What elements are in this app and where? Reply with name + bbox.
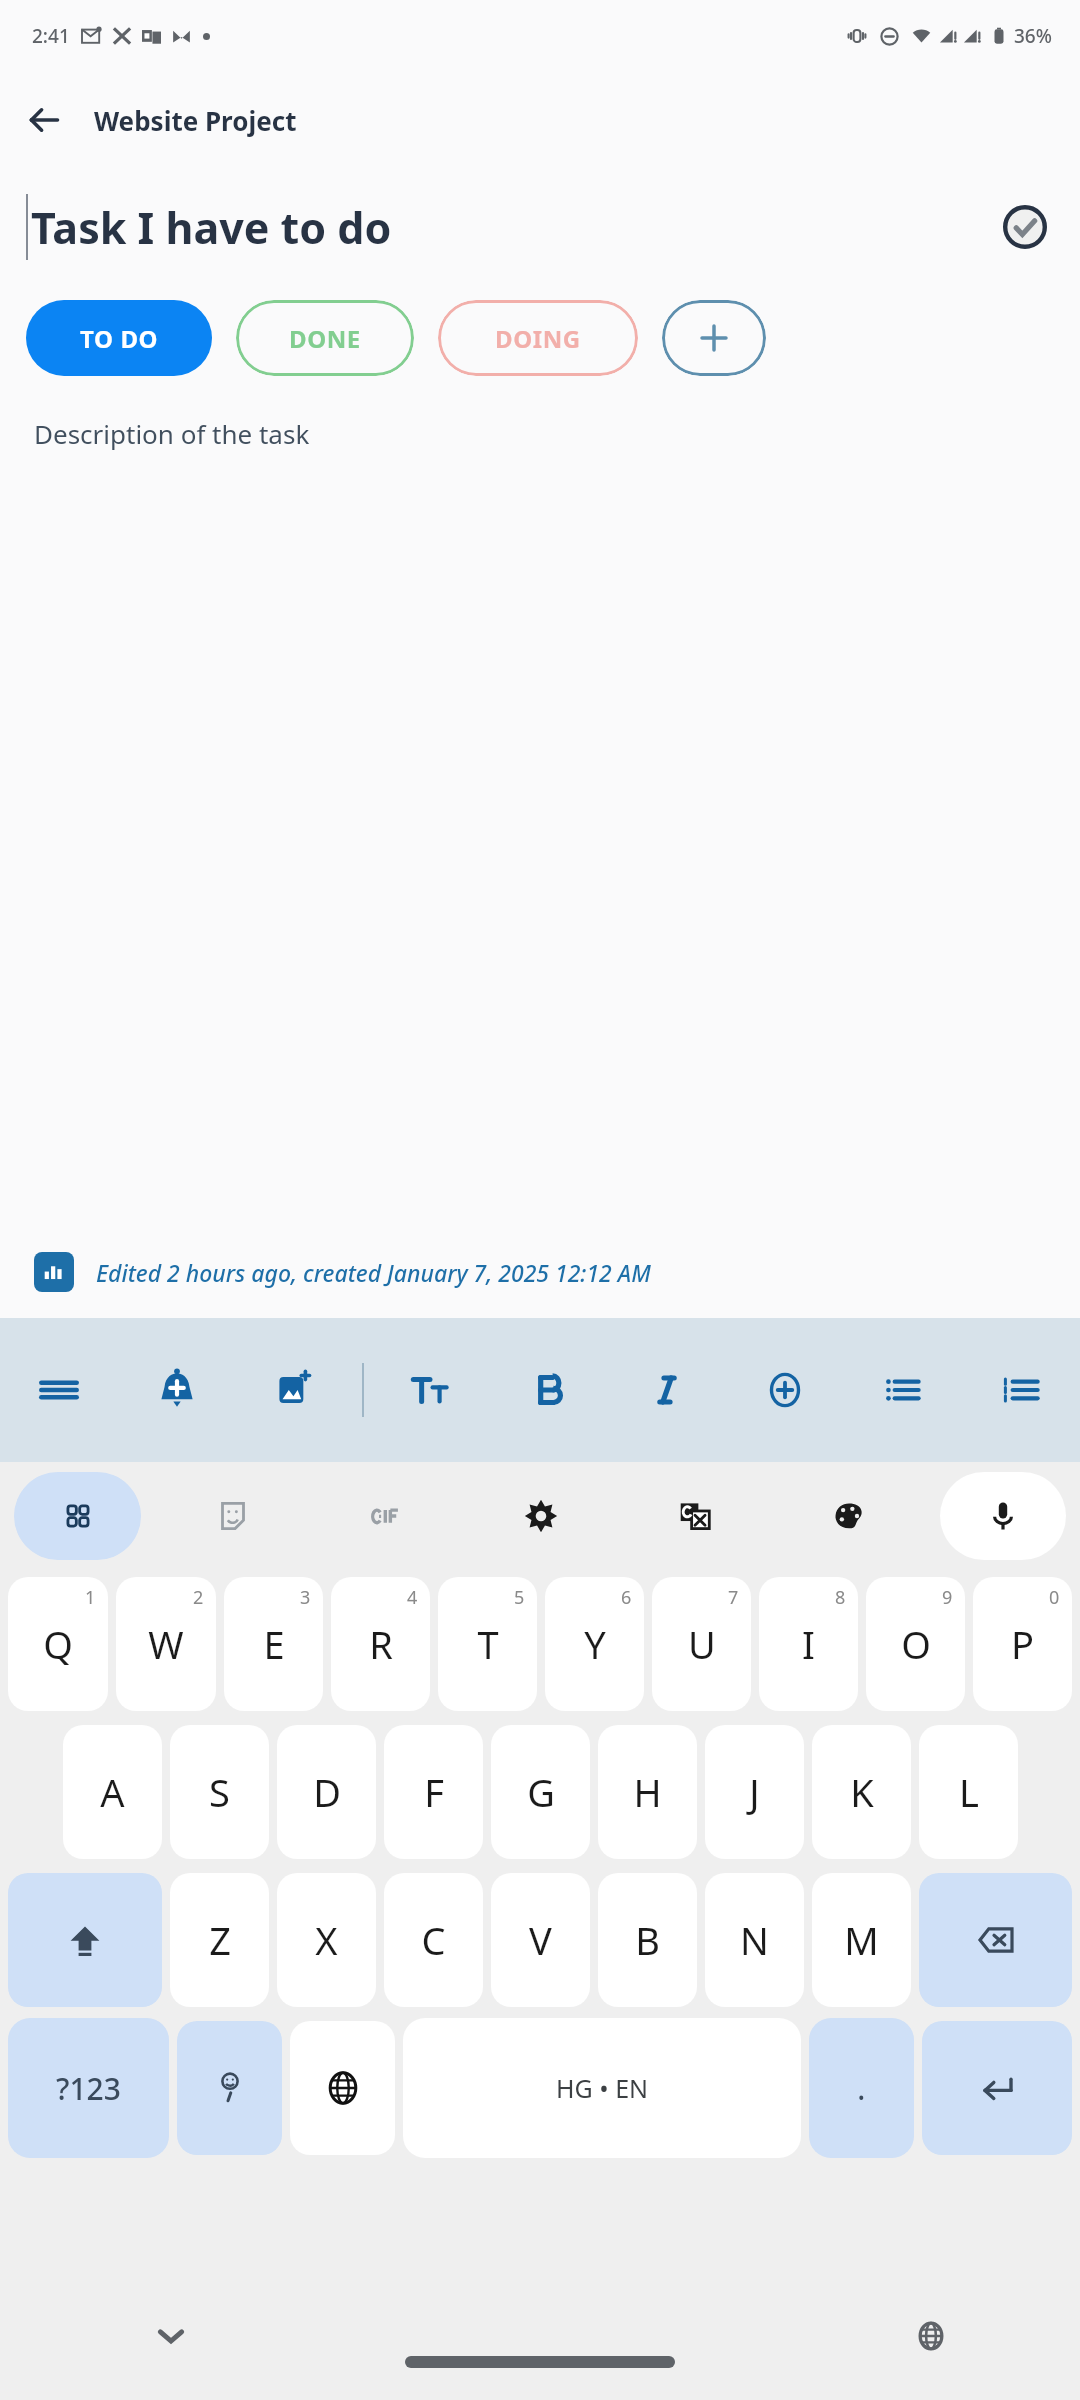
button[interactable]: Menu xyxy=(0,1318,118,1462)
button[interactable]: N xyxy=(705,1873,804,2007)
button[interactable]: M xyxy=(812,1873,911,2007)
button[interactable]: W xyxy=(116,1577,216,1711)
button[interactable]: Add reminder xyxy=(118,1318,236,1462)
button[interactable]: TO DO xyxy=(26,300,212,376)
button[interactable]: Settings xyxy=(478,1472,604,1560)
staticText: 2 xyxy=(193,1585,204,1610)
button[interactable]: Insert xyxy=(726,1318,844,1462)
button[interactable]: Change language xyxy=(290,2021,395,2155)
staticText: 1 xyxy=(85,1585,96,1610)
button[interactable]: U xyxy=(652,1577,751,1711)
button[interactable]: Numbered list xyxy=(962,1318,1080,1462)
button[interactable]: X xyxy=(277,1873,376,2007)
button[interactable]: HG • EN xyxy=(403,2018,801,2158)
button[interactable]: V xyxy=(491,1873,590,2007)
button[interactable]: Switch input method xyxy=(900,2305,962,2367)
button[interactable]: A xyxy=(63,1725,162,1859)
button[interactable]: . xyxy=(809,2018,914,2158)
staticText: X xyxy=(315,1914,338,1966)
staticText: Z xyxy=(209,1914,231,1966)
staticText: J xyxy=(749,1766,760,1818)
staticText: 9 xyxy=(942,1585,953,1610)
staticText: S xyxy=(209,1766,230,1818)
staticText: N xyxy=(740,1914,769,1966)
button[interactable]: Voice input xyxy=(940,1472,1066,1560)
staticText: 36% xyxy=(1014,23,1052,49)
button[interactable]: Q xyxy=(8,1577,108,1711)
button[interactable]: Hide keyboard xyxy=(140,2305,202,2367)
button[interactable]: Text style xyxy=(372,1318,490,1462)
button[interactable]: G xyxy=(491,1725,590,1859)
button[interactable]: Emoji xyxy=(177,2021,282,2155)
button[interactable]: ?123 xyxy=(8,2018,169,2158)
button[interactable]: DONE xyxy=(236,300,414,376)
staticText: TO DO xyxy=(80,322,159,355)
button[interactable]: Enter xyxy=(922,2021,1072,2155)
staticText: Q xyxy=(43,1618,73,1670)
button[interactable]: E xyxy=(224,1577,323,1711)
button[interactable]: B xyxy=(598,1873,697,2007)
staticText: Description of the task xyxy=(34,416,310,451)
button[interactable]: Z xyxy=(170,1873,269,2007)
button[interactable]: GIF xyxy=(324,1472,450,1560)
button[interactable]: K xyxy=(812,1725,911,1859)
button[interactable]: Bulleted list xyxy=(844,1318,962,1462)
staticText: Y xyxy=(584,1618,606,1670)
staticText: L xyxy=(959,1766,979,1818)
staticText: Edited 2 hours ago, created January 7, 2… xyxy=(96,1257,651,1288)
button[interactable]: C xyxy=(384,1873,483,2007)
staticText: Task I have to do xyxy=(31,198,998,257)
button[interactable]: S xyxy=(170,1725,269,1859)
staticText: O xyxy=(901,1618,931,1670)
button[interactable]: Add status xyxy=(662,300,766,376)
staticText: R xyxy=(369,1618,393,1670)
button[interactable]: I xyxy=(759,1577,858,1711)
staticText: 6 xyxy=(621,1585,632,1610)
button[interactable]: Italic xyxy=(608,1318,726,1462)
button[interactable]: T xyxy=(438,1577,537,1711)
staticText: G xyxy=(527,1766,555,1818)
button[interactable]: R xyxy=(331,1577,430,1711)
staticText: P xyxy=(1011,1618,1034,1670)
staticText: F xyxy=(424,1766,444,1818)
staticText: 3 xyxy=(300,1585,311,1610)
button[interactable]: J xyxy=(705,1725,804,1859)
button[interactable]: D xyxy=(277,1725,376,1859)
button[interactable]: P xyxy=(973,1577,1072,1711)
staticText: Website Project xyxy=(94,103,297,138)
staticText: 0 xyxy=(1049,1585,1060,1610)
staticText: DONE xyxy=(289,322,361,355)
staticText: C xyxy=(421,1914,446,1966)
staticText: 5 xyxy=(514,1585,525,1610)
button[interactable]: Back xyxy=(16,92,72,148)
staticText: I xyxy=(802,1618,815,1670)
button[interactable]: Description of the task xyxy=(0,390,1080,1226)
button[interactable]: O xyxy=(866,1577,965,1711)
button[interactable]: F xyxy=(384,1725,483,1859)
staticText: B xyxy=(635,1914,660,1966)
button[interactable]: DOING xyxy=(438,300,638,376)
button[interactable]: Keyboard modes xyxy=(14,1472,141,1560)
button[interactable]: Add image xyxy=(236,1318,354,1462)
button[interactable]: Stickers xyxy=(169,1472,296,1560)
staticText: 7 xyxy=(728,1585,739,1610)
button[interactable]: Translate xyxy=(632,1472,758,1560)
staticText: M xyxy=(844,1914,879,1966)
staticText: U xyxy=(688,1618,716,1670)
button[interactable]: Shift xyxy=(8,1873,162,2007)
staticText: H xyxy=(633,1766,662,1818)
button[interactable]: Backspace xyxy=(919,1873,1072,2007)
button[interactable]: H xyxy=(598,1725,697,1859)
staticText: . xyxy=(857,2066,866,2110)
button[interactable]: Theme xyxy=(786,1472,912,1560)
staticText: 8 xyxy=(835,1585,846,1610)
staticText: HG • EN xyxy=(556,2071,649,2105)
staticText: 2:41 xyxy=(32,23,70,49)
staticText: T xyxy=(477,1618,499,1670)
button[interactable]: Bold xyxy=(490,1318,608,1462)
staticText: E xyxy=(263,1618,285,1670)
button[interactable]: Y xyxy=(545,1577,644,1711)
button[interactable]: L xyxy=(919,1725,1018,1859)
staticText: A xyxy=(100,1766,125,1818)
button[interactable]: Mark complete xyxy=(998,200,1052,254)
